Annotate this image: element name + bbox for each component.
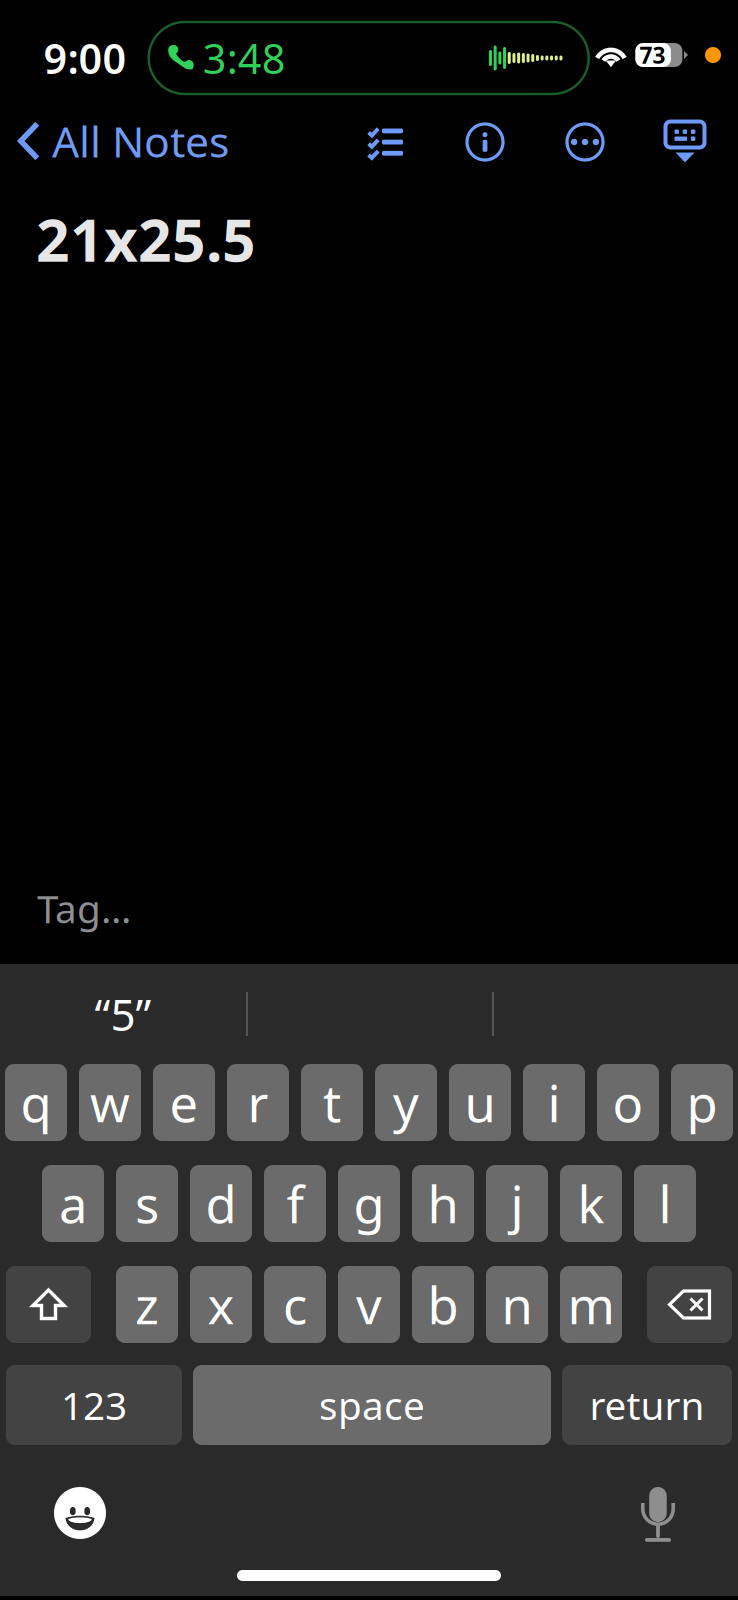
button[interactable]: Shift — [6, 1266, 91, 1343]
button[interactable]: b — [412, 1266, 474, 1343]
staticText: 3:48 — [203, 31, 286, 85]
staticText: return — [589, 1379, 704, 1431]
staticText: y — [393, 1069, 419, 1136]
staticText: “5” — [94, 985, 151, 1043]
staticText: w — [90, 1069, 130, 1136]
button[interactable]: Emoji — [54, 1487, 106, 1539]
staticText: b — [427, 1271, 458, 1338]
button[interactable]: Info — [435, 107, 535, 177]
staticText: q — [20, 1069, 51, 1136]
staticText: i — [547, 1069, 560, 1136]
staticText: u — [464, 1069, 495, 1136]
button[interactable]: r — [227, 1064, 289, 1141]
button[interactable]: o — [597, 1064, 659, 1141]
staticText: x — [207, 1271, 234, 1338]
button[interactable]: return — [562, 1365, 732, 1445]
staticText: o — [612, 1069, 643, 1136]
button[interactable]: All Notes — [0, 109, 239, 173]
button[interactable]: u — [449, 1064, 511, 1141]
staticText: d — [205, 1170, 236, 1237]
button[interactable]: i — [523, 1064, 585, 1141]
staticText: n — [501, 1271, 532, 1338]
staticText: k — [577, 1170, 604, 1237]
button[interactable]: w — [79, 1064, 141, 1141]
staticText: e — [169, 1069, 198, 1136]
staticText: r — [247, 1069, 268, 1136]
staticText: 73 — [639, 40, 665, 70]
button[interactable]: space — [193, 1365, 551, 1445]
staticText: g — [353, 1170, 384, 1237]
staticText: j — [510, 1170, 523, 1237]
staticText: 9:00 — [43, 31, 126, 85]
button[interactable]: v — [338, 1266, 400, 1343]
button[interactable]: k — [560, 1165, 622, 1242]
staticText: a — [59, 1170, 87, 1237]
staticText: space — [319, 1379, 425, 1431]
button[interactable]: x — [190, 1266, 252, 1343]
staticText: m — [567, 1271, 614, 1338]
button[interactable]: l — [634, 1165, 696, 1242]
button[interactable]: y — [375, 1064, 437, 1141]
button[interactable]: f — [264, 1165, 326, 1242]
button[interactable]: m — [560, 1266, 622, 1343]
staticText: 21x25.5 — [36, 200, 256, 278]
button[interactable]: Checklist — [335, 107, 435, 177]
staticText: Tag... — [37, 883, 131, 934]
button[interactable]: e — [153, 1064, 215, 1141]
button[interactable]: d — [190, 1165, 252, 1242]
staticText: s — [135, 1170, 159, 1237]
button[interactable]: c — [264, 1266, 326, 1343]
button[interactable]: q — [5, 1064, 67, 1141]
button[interactable]: s — [116, 1165, 178, 1242]
staticText: f — [286, 1170, 303, 1237]
button[interactable]: n — [486, 1266, 548, 1343]
button[interactable]: More — [535, 107, 635, 177]
button[interactable]: Hide keyboard — [635, 107, 735, 177]
staticText: v — [356, 1271, 382, 1338]
button[interactable]: g — [338, 1165, 400, 1242]
staticText: h — [427, 1170, 458, 1237]
staticText: 123 — [61, 1379, 127, 1431]
button[interactable]: p — [671, 1064, 733, 1141]
staticText: All Notes — [52, 113, 229, 169]
button[interactable]: 123 — [6, 1365, 182, 1445]
staticText: p — [686, 1069, 717, 1136]
button[interactable]: Dictate — [641, 1487, 675, 1542]
button[interactable]: a — [42, 1165, 104, 1242]
staticText: c — [283, 1271, 307, 1338]
staticText: z — [135, 1271, 159, 1338]
staticText: t — [323, 1069, 341, 1136]
button[interactable]: Delete — [647, 1266, 732, 1343]
button[interactable]: “5” — [0, 972, 246, 1056]
button[interactable]: t — [301, 1064, 363, 1141]
button[interactable]: j — [486, 1165, 548, 1242]
staticText: l — [658, 1170, 671, 1237]
button[interactable]: z — [116, 1266, 178, 1343]
button[interactable]: h — [412, 1165, 474, 1242]
